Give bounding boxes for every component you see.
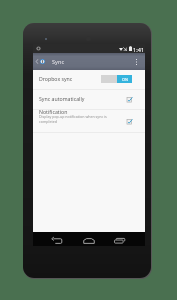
button[interactable]: Back bbox=[51, 235, 63, 244]
button[interactable]: More options bbox=[132, 53, 141, 70]
staticText: Notification bbox=[39, 108, 68, 115]
button[interactable]: Notification bbox=[33, 110, 145, 132]
button[interactable]: Checkbox bbox=[127, 118, 136, 127]
button[interactable]: Checkbox bbox=[127, 96, 136, 105]
staticText: 1:41 bbox=[133, 46, 145, 54]
button[interactable]: Recent apps bbox=[114, 235, 126, 244]
staticText: Sync automatically bbox=[39, 95, 85, 102]
staticText: Dropbox sync bbox=[39, 75, 73, 82]
button[interactable]: Home bbox=[83, 235, 95, 244]
button[interactable]: Dropbox sync bbox=[33, 70, 145, 89]
button[interactable]: Dropbox sync toggle bbox=[101, 75, 132, 83]
staticText: Display pop-up notification when sync is… bbox=[39, 114, 107, 124]
button[interactable]: Navigate up bbox=[34, 56, 40, 67]
staticText: Sync bbox=[52, 58, 65, 66]
staticText: ON bbox=[122, 77, 128, 82]
button[interactable]: Sync automatically bbox=[33, 90, 145, 109]
